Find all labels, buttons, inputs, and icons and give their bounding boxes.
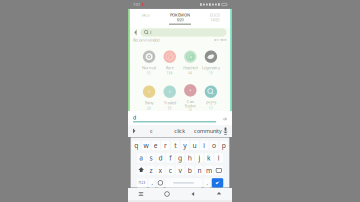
button[interactable]: p: [219, 141, 228, 150]
staticText: z: [149, 166, 152, 175]
button[interactable]: community: [194, 127, 222, 135]
button[interactable]: u: [190, 141, 199, 150]
button[interactable]: v: [176, 166, 184, 175]
button[interactable]: i: [200, 141, 208, 150]
button[interactable]: Back: [133, 29, 138, 36]
button[interactable]: Shiny: [139, 85, 159, 110]
button[interactable]: g: [176, 153, 184, 162]
button[interactable]: j: [195, 153, 204, 162]
button[interactable]: Can: [180, 84, 201, 111]
staticText: ,: [152, 179, 153, 186]
button[interactable]: z: [147, 166, 155, 175]
staticText: 8/20: [176, 17, 183, 22]
button[interactable]: e: [151, 141, 160, 150]
staticText: 7:01: [133, 2, 140, 7]
staticText: TAGS: [141, 12, 150, 18]
button[interactable]: q: [132, 141, 140, 150]
button[interactable]: More suggestions: [131, 127, 137, 135]
button[interactable]: b: [185, 166, 194, 175]
staticText: EGGS: [210, 12, 220, 18]
button[interactable]: ?123: [137, 178, 147, 187]
staticText: f: [169, 153, 171, 162]
staticText: 72: [188, 108, 192, 111]
staticText: POKÉMON: [170, 12, 190, 18]
button[interactable]: m: [205, 166, 213, 175]
button[interactable]: t: [171, 141, 179, 150]
staticText: x: [159, 166, 163, 175]
button[interactable]: Normal: [139, 50, 159, 75]
button[interactable]: 0*2*3: [201, 85, 221, 110]
button[interactable]: Traded: [159, 85, 180, 110]
staticText: g: [178, 153, 182, 162]
button[interactable]: w: [142, 141, 150, 150]
staticText: ok: [223, 116, 227, 121]
button[interactable]: Hatched: [180, 50, 201, 75]
button[interactable]: Space: [165, 178, 202, 187]
staticText: Traded: [164, 100, 176, 105]
button[interactable]: d: [156, 153, 165, 162]
staticText: Recommended: [133, 37, 159, 43]
button[interactable]: ,: [149, 178, 156, 187]
staticText: l: [218, 153, 220, 162]
staticText: v: [178, 166, 181, 175]
button[interactable]: f: [166, 153, 174, 162]
staticText: Hatched: [183, 65, 197, 70]
button[interactable]: o: [210, 141, 218, 150]
staticText: d: [133, 114, 136, 121]
button[interactable]: c: [166, 166, 174, 175]
staticText: 55: [147, 71, 151, 75]
button[interactable]: Home: [154, 192, 180, 196]
button[interactable]: TAGS: [128, 9, 163, 28]
staticText: Legendary: [202, 65, 220, 70]
staticText: w: [143, 141, 148, 150]
staticText: See more: [214, 38, 227, 42]
button[interactable]: .: [203, 178, 210, 187]
button[interactable]: r: [161, 141, 170, 150]
staticText: click: [174, 127, 185, 135]
staticText: c: [150, 127, 153, 135]
button[interactable]: Backspace: [215, 166, 223, 175]
button[interactable]: l: [215, 153, 223, 162]
button[interactable]: EGGS: [197, 9, 232, 28]
staticText: i: [203, 141, 205, 150]
button[interactable]: ok: [216, 116, 227, 121]
staticText: Can: [187, 99, 194, 104]
button[interactable]: s: [147, 153, 155, 162]
button[interactable]: Voice input: [222, 127, 229, 135]
staticText: c: [169, 166, 172, 175]
button[interactable]: POKÉMON: [163, 9, 197, 28]
button[interactable]: Hide keyboard: [206, 191, 232, 197]
button[interactable]: y: [181, 141, 189, 150]
button[interactable]: n: [195, 166, 204, 175]
button[interactable]: x: [156, 166, 165, 175]
staticText: n: [197, 166, 201, 175]
button[interactable]: click: [166, 127, 194, 135]
button[interactable]: Back: [180, 191, 206, 197]
button[interactable]: Rare: [159, 50, 180, 75]
staticText: u: [192, 141, 196, 150]
staticText: y: [183, 141, 186, 150]
staticText: ?123: [138, 181, 145, 185]
staticText: 17: [209, 107, 213, 110]
staticText: o: [212, 141, 216, 150]
button[interactable]: Legendary: [201, 50, 221, 75]
button[interactable]: h: [185, 153, 194, 162]
staticText: 10: [209, 71, 213, 75]
staticText: 24: [147, 107, 151, 110]
button[interactable]: k: [205, 153, 213, 162]
staticText: q: [134, 141, 138, 150]
staticText: Normal: [142, 65, 156, 70]
staticText: community: [194, 127, 222, 135]
staticText: e: [154, 141, 158, 150]
button[interactable]: c: [137, 127, 166, 135]
staticText: h: [188, 153, 192, 162]
staticText: m: [206, 166, 212, 175]
button[interactable]: Emoji: [157, 178, 164, 187]
button[interactable]: Shift: [137, 166, 145, 175]
button[interactable]: See more: [214, 39, 227, 41]
button[interactable]: Recents: [128, 191, 154, 197]
staticText: s: [149, 153, 152, 162]
staticText: r: [164, 141, 167, 150]
button[interactable]: Enter: [212, 178, 223, 187]
button[interactable]: a: [137, 153, 145, 162]
